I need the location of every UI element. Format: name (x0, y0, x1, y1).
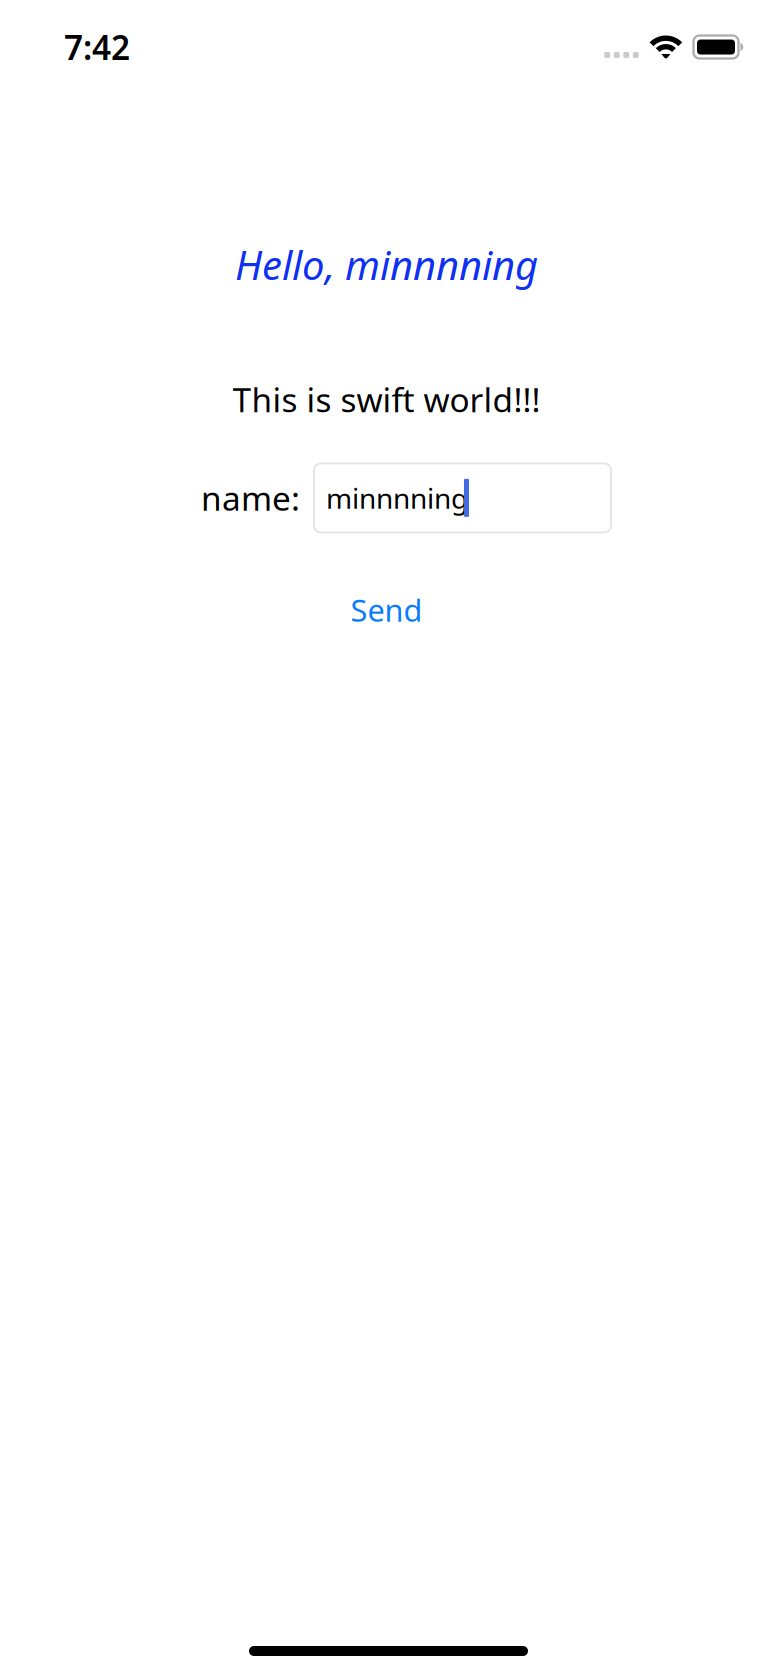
staticText: minnnning (326, 479, 468, 516)
button[interactable]: Send (350, 589, 422, 630)
staticText: Hello, minnnning (235, 238, 538, 291)
button[interactable]: minnnning (314, 463, 611, 532)
staticText: Send (350, 589, 422, 630)
staticText: name: (201, 476, 300, 520)
staticText: This is swift world!!! (232, 377, 540, 421)
staticText: 7:42 (64, 25, 130, 69)
